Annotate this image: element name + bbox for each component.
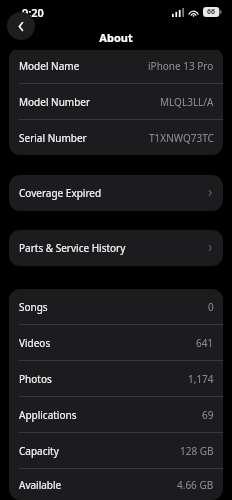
staticText: Model Name	[19, 59, 80, 73]
staticText: 0	[208, 300, 214, 314]
staticText: Serial Number	[19, 131, 87, 145]
staticText: Parts & Service History	[19, 241, 126, 255]
staticText: 128 GB	[180, 444, 214, 458]
staticText: Model Number	[19, 95, 91, 109]
staticText: 4.66 GB	[177, 478, 214, 492]
staticText: T1XNWQ73TC	[149, 131, 214, 145]
button[interactable]: Model Name	[9, 48, 223, 83]
button[interactable]: Parts & Service History	[9, 230, 223, 266]
staticText: MLQL3LL/A	[160, 95, 214, 109]
button[interactable]: Photos	[9, 361, 223, 396]
staticText: iPhone 13 Pro	[148, 59, 214, 73]
button[interactable]: Back	[7, 12, 35, 40]
staticText: 9:20	[22, 5, 44, 20]
staticText: 1,174	[188, 372, 214, 386]
staticText: Available	[19, 478, 62, 492]
staticText: Photos	[19, 372, 52, 386]
staticText: 641	[196, 336, 214, 350]
staticText: Capacity	[19, 444, 59, 458]
staticText: Version	[19, 30, 55, 44]
staticText: Applications	[19, 408, 77, 422]
staticText: Songs	[19, 300, 48, 314]
button[interactable]: Model Number	[9, 84, 223, 119]
staticText: Coverage Expired	[19, 186, 102, 200]
button[interactable]: Applications	[9, 397, 223, 432]
staticText: 66	[207, 7, 216, 17]
button[interactable]: Coverage Expired	[9, 175, 223, 211]
button[interactable]: Songs	[9, 289, 223, 324]
button[interactable]: Videos	[9, 325, 223, 360]
staticText: 69	[202, 408, 214, 422]
button[interactable]: Serial Number	[9, 120, 223, 155]
staticText: Videos	[19, 336, 51, 350]
button[interactable]: Available	[9, 469, 223, 500]
button[interactable]: Capacity	[9, 433, 223, 468]
staticText: About	[0, 30, 232, 45]
